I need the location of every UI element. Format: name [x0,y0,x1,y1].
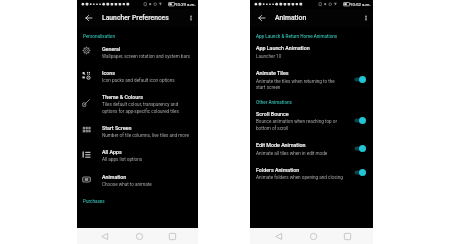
button[interactable]: Animate Tiles [353,74,369,84]
button[interactable] [77,145,198,161]
button[interactable] [250,163,373,179]
button[interactable]: Navigate up [81,9,96,27]
staticText: All apps list options [102,157,143,162]
button[interactable] [250,66,373,88]
staticText: All Apps [102,149,122,155]
button[interactable]: Scroll Bounce [353,115,369,125]
staticText: 10:29 a.m. [175,2,196,7]
button[interactable]: More options [359,9,373,27]
staticText: Animate all tiles when in edit mode [256,151,328,156]
staticText: Animate the tiles when returning to the [256,79,335,84]
staticText: General [102,46,121,52]
staticText: Bounce animation when reaching top or [256,119,337,124]
button[interactable] [77,66,198,82]
staticText: Animation [102,174,127,180]
staticText: Other Animations [256,100,292,105]
staticText: Edit Mode Animation [256,142,306,148]
staticText: Number of tile columns, live tiles and m… [102,133,189,138]
staticText: Personalisation [83,34,116,39]
button[interactable]: Home [305,228,321,244]
staticText: Icons [102,70,115,76]
staticText: App Launch & Return Home Animations [256,34,338,39]
staticText: Icon packs and default icon options [102,78,175,83]
staticText: Wallpaper, screen rotation and system ba… [102,54,190,59]
button[interactable]: Edit Mode Animation [353,143,369,153]
button[interactable]: Recent apps [339,228,355,244]
button[interactable]: Back [96,228,112,244]
button[interactable] [77,121,198,137]
button[interactable]: Home [131,228,147,244]
staticText: Scroll Bounce [256,111,289,117]
button[interactable] [77,42,198,58]
button[interactable]: Back [270,228,286,244]
staticText: Animation [275,14,307,22]
button[interactable]: Navigate up [254,9,269,27]
button[interactable] [77,90,198,112]
button[interactable]: Folders Animation [353,167,369,177]
button[interactable] [250,41,373,57]
staticText: Folders Animation [256,167,300,173]
staticText: options for app-specific coloured tiles [102,109,179,114]
button[interactable] [77,170,198,186]
staticText: Purchases [83,199,105,204]
staticText: Choose what to animate [102,182,152,187]
button[interactable] [250,107,373,129]
button[interactable] [250,138,373,154]
staticText: Launcher Preferences [102,14,169,22]
staticText: Animate Tiles [256,70,289,76]
staticText: 10:52 a.m. [350,2,371,7]
button[interactable]: Recent apps [164,228,180,244]
staticText: Tiles default colour, transparency and [102,102,179,107]
staticText: bottom of scroll [256,126,289,131]
staticText: start screen [256,85,281,90]
staticText: Start Screen [102,125,132,131]
staticText: Launcher 10 [256,54,282,59]
button[interactable]: More options [184,9,198,27]
staticText: Theme & Colours [102,94,143,100]
staticText: App Launch Animation [256,45,310,51]
staticText: Animate folders when opening and closing [256,175,343,180]
